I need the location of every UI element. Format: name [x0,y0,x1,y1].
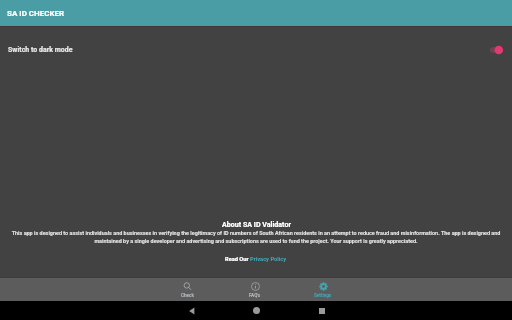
staticText: Settings [314,293,332,298]
staticText: Read Our [225,256,250,263]
button[interactable]: Check [153,278,221,301]
button[interactable]: Settings [289,278,357,301]
button[interactable]: Read Our [225,256,287,263]
button[interactable]: FAQ's [221,278,289,301]
staticText: FAQ's [249,293,261,298]
staticText: This app is designed to assist individua… [7,230,505,244]
staticText: Check [181,293,194,298]
button[interactable]: Recent apps [312,301,331,320]
button[interactable]: Back [182,301,201,320]
staticText: Privacy Policy [250,256,287,263]
staticText: SA ID CHECKER [7,9,65,18]
button[interactable]: Switch to dark mode [482,43,504,57]
staticText: Switch to dark mode [8,46,482,54]
button[interactable]: Home [247,301,266,320]
button[interactable]: Switch to dark mode [0,26,512,74]
staticText: About SA ID Validator [222,220,291,228]
